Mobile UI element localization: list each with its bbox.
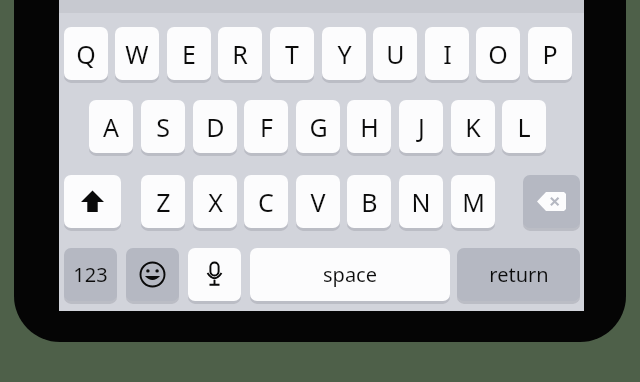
button[interactable]: R <box>218 27 262 80</box>
button[interactable]: Dictate <box>188 248 241 301</box>
staticText: D <box>206 110 225 144</box>
button[interactable]: 123 <box>64 248 117 301</box>
button[interactable]: H <box>347 100 391 153</box>
staticText: U <box>386 37 405 71</box>
staticText: J <box>418 110 425 144</box>
staticText: I <box>443 37 452 71</box>
staticText: H <box>360 110 379 144</box>
staticText: space <box>323 261 377 288</box>
staticText: Q <box>76 37 96 71</box>
staticText: L <box>517 110 531 144</box>
staticText: 123 <box>73 261 108 288</box>
button[interactable]: L <box>502 100 546 153</box>
button[interactable]: D <box>193 100 237 153</box>
staticText: X <box>208 185 223 219</box>
button[interactable]: Delete <box>523 175 580 228</box>
button[interactable]: Q <box>64 27 108 80</box>
button[interactable]: Shift <box>64 175 121 228</box>
staticText: return <box>489 261 549 288</box>
button[interactable]: V <box>296 175 340 228</box>
staticText: G <box>309 110 328 144</box>
staticText: Z <box>156 185 171 219</box>
staticText: V <box>310 185 326 219</box>
button[interactable]: K <box>451 100 495 153</box>
button[interactable]: space <box>250 248 450 301</box>
staticText: O <box>488 37 508 71</box>
button[interactable]: I <box>425 27 469 80</box>
staticText: S <box>156 110 170 144</box>
button[interactable]: P <box>528 27 572 80</box>
button[interactable]: B <box>347 175 391 228</box>
staticText: E <box>182 37 196 71</box>
button[interactable]: O <box>476 27 520 80</box>
button[interactable]: X <box>193 175 237 228</box>
button[interactable]: Y <box>322 27 366 80</box>
button[interactable]: E <box>167 27 211 80</box>
staticText: R <box>232 37 248 71</box>
button[interactable]: C <box>244 175 288 228</box>
button[interactable]: W <box>115 27 159 80</box>
button[interactable]: J <box>399 100 443 153</box>
staticText: A <box>103 110 119 144</box>
staticText: N <box>411 185 431 219</box>
button[interactable]: N <box>399 175 443 228</box>
staticText: K <box>465 110 481 144</box>
staticText: F <box>260 110 273 144</box>
button[interactable]: F <box>244 100 288 153</box>
button[interactable]: U <box>373 27 417 80</box>
button[interactable]: Z <box>141 175 185 228</box>
button[interactable]: T <box>270 27 314 80</box>
staticText: M <box>462 185 485 219</box>
staticText: B <box>361 185 378 219</box>
staticText: W <box>125 37 149 71</box>
button[interactable]: Emoji <box>126 248 179 301</box>
button[interactable]: M <box>451 175 495 228</box>
button[interactable]: A <box>89 100 133 153</box>
button[interactable]: S <box>141 100 185 153</box>
staticText: P <box>542 37 558 71</box>
button[interactable]: return <box>457 248 580 301</box>
staticText: C <box>258 185 274 219</box>
staticText: T <box>285 37 299 71</box>
button[interactable]: G <box>296 100 340 153</box>
staticText: Y <box>337 37 352 71</box>
